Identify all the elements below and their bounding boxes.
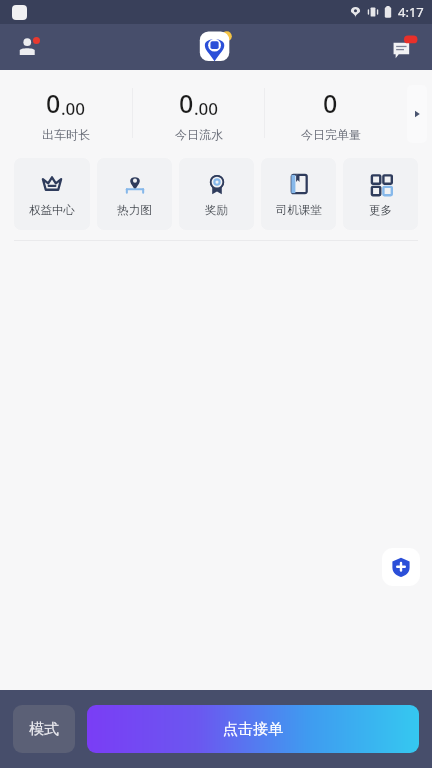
- staticText: 今日完单量: [301, 127, 361, 142]
- button[interactable]: 奖励: [179, 158, 254, 230]
- staticText: 0: [323, 86, 338, 120]
- button[interactable]: 权益中心: [14, 158, 90, 230]
- staticText: 热力图: [117, 203, 152, 217]
- button[interactable]: 0: [0, 70, 132, 158]
- button[interactable]: 更多: [343, 158, 418, 230]
- button[interactable]: Safety center: [382, 548, 420, 586]
- button[interactable]: Expand stats: [407, 85, 427, 143]
- staticText: 0: [46, 86, 61, 120]
- staticText: 司机课堂: [276, 203, 322, 217]
- staticText: 今日流水: [175, 127, 223, 142]
- staticText: 0: [179, 86, 194, 120]
- staticText: 更多: [369, 203, 392, 217]
- button[interactable]: 热力图: [97, 158, 172, 230]
- staticText: 权益中心: [29, 203, 75, 217]
- staticText: 奖励: [205, 203, 228, 217]
- button[interactable]: Profile: [10, 28, 48, 66]
- staticText: .00: [61, 97, 86, 120]
- staticText: 点击接单: [223, 720, 283, 739]
- button[interactable]: App logo: [197, 28, 235, 66]
- staticText: .00: [194, 97, 219, 120]
- button[interactable]: Messages: [386, 28, 424, 66]
- button[interactable]: 0: [265, 70, 396, 158]
- button[interactable]: 点击接单: [87, 705, 419, 753]
- staticText: 出车时长: [42, 127, 90, 142]
- button[interactable]: 司机课堂: [261, 158, 336, 230]
- staticText: 模式: [29, 720, 59, 739]
- button[interactable]: 0: [133, 70, 264, 158]
- button[interactable]: 模式: [13, 705, 75, 753]
- staticText: 4:17: [398, 3, 424, 21]
